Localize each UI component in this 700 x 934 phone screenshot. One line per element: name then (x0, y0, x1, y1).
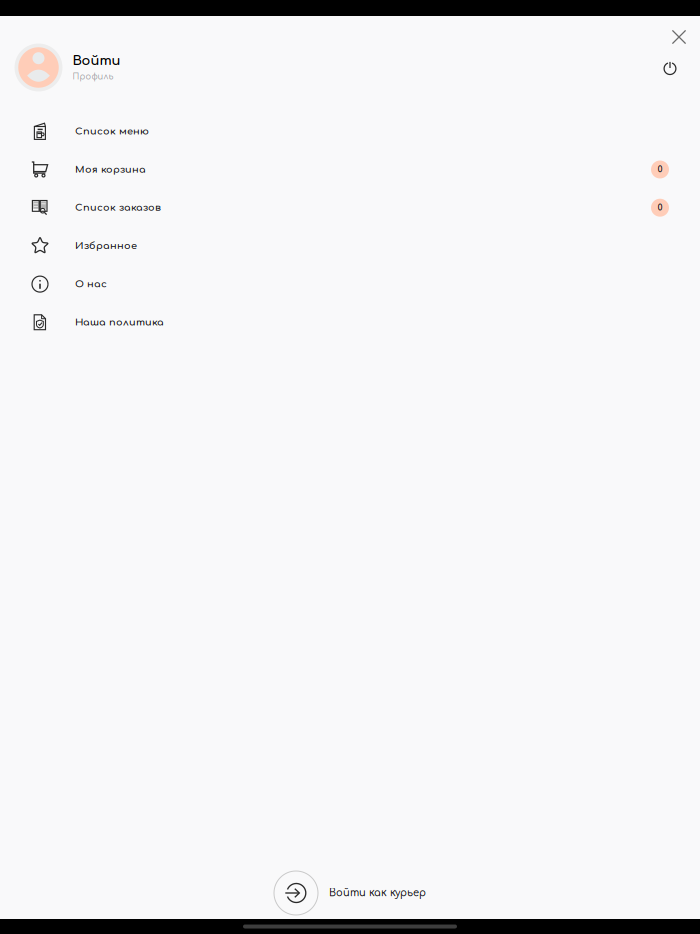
staticText: Избранное (75, 240, 137, 251)
staticText: 0 (657, 203, 662, 213)
button[interactable]: О нас (0, 265, 700, 303)
button[interactable]: Войти как курьер (274, 871, 426, 915)
button[interactable]: Close menu (660, 18, 698, 56)
staticText: Моя корзина (75, 164, 146, 175)
button[interactable]: Избранное (0, 227, 700, 265)
staticText: Войти как курьер (329, 887, 426, 898)
staticText: Профиль (72, 72, 113, 81)
button[interactable]: Моя корзина (0, 150, 700, 189)
button[interactable]: Log out (651, 49, 689, 87)
staticText: Войти (72, 54, 120, 68)
button[interactable]: Список заказов (0, 189, 700, 227)
staticText: Наша политика (75, 317, 164, 328)
staticText: Список меню (75, 126, 149, 137)
button[interactable]: Наша политика (0, 303, 700, 341)
staticText: 0 (657, 165, 662, 174)
staticText: О нас (75, 279, 107, 290)
button[interactable]: Список меню (0, 112, 700, 150)
staticText: Список заказов (75, 202, 161, 213)
